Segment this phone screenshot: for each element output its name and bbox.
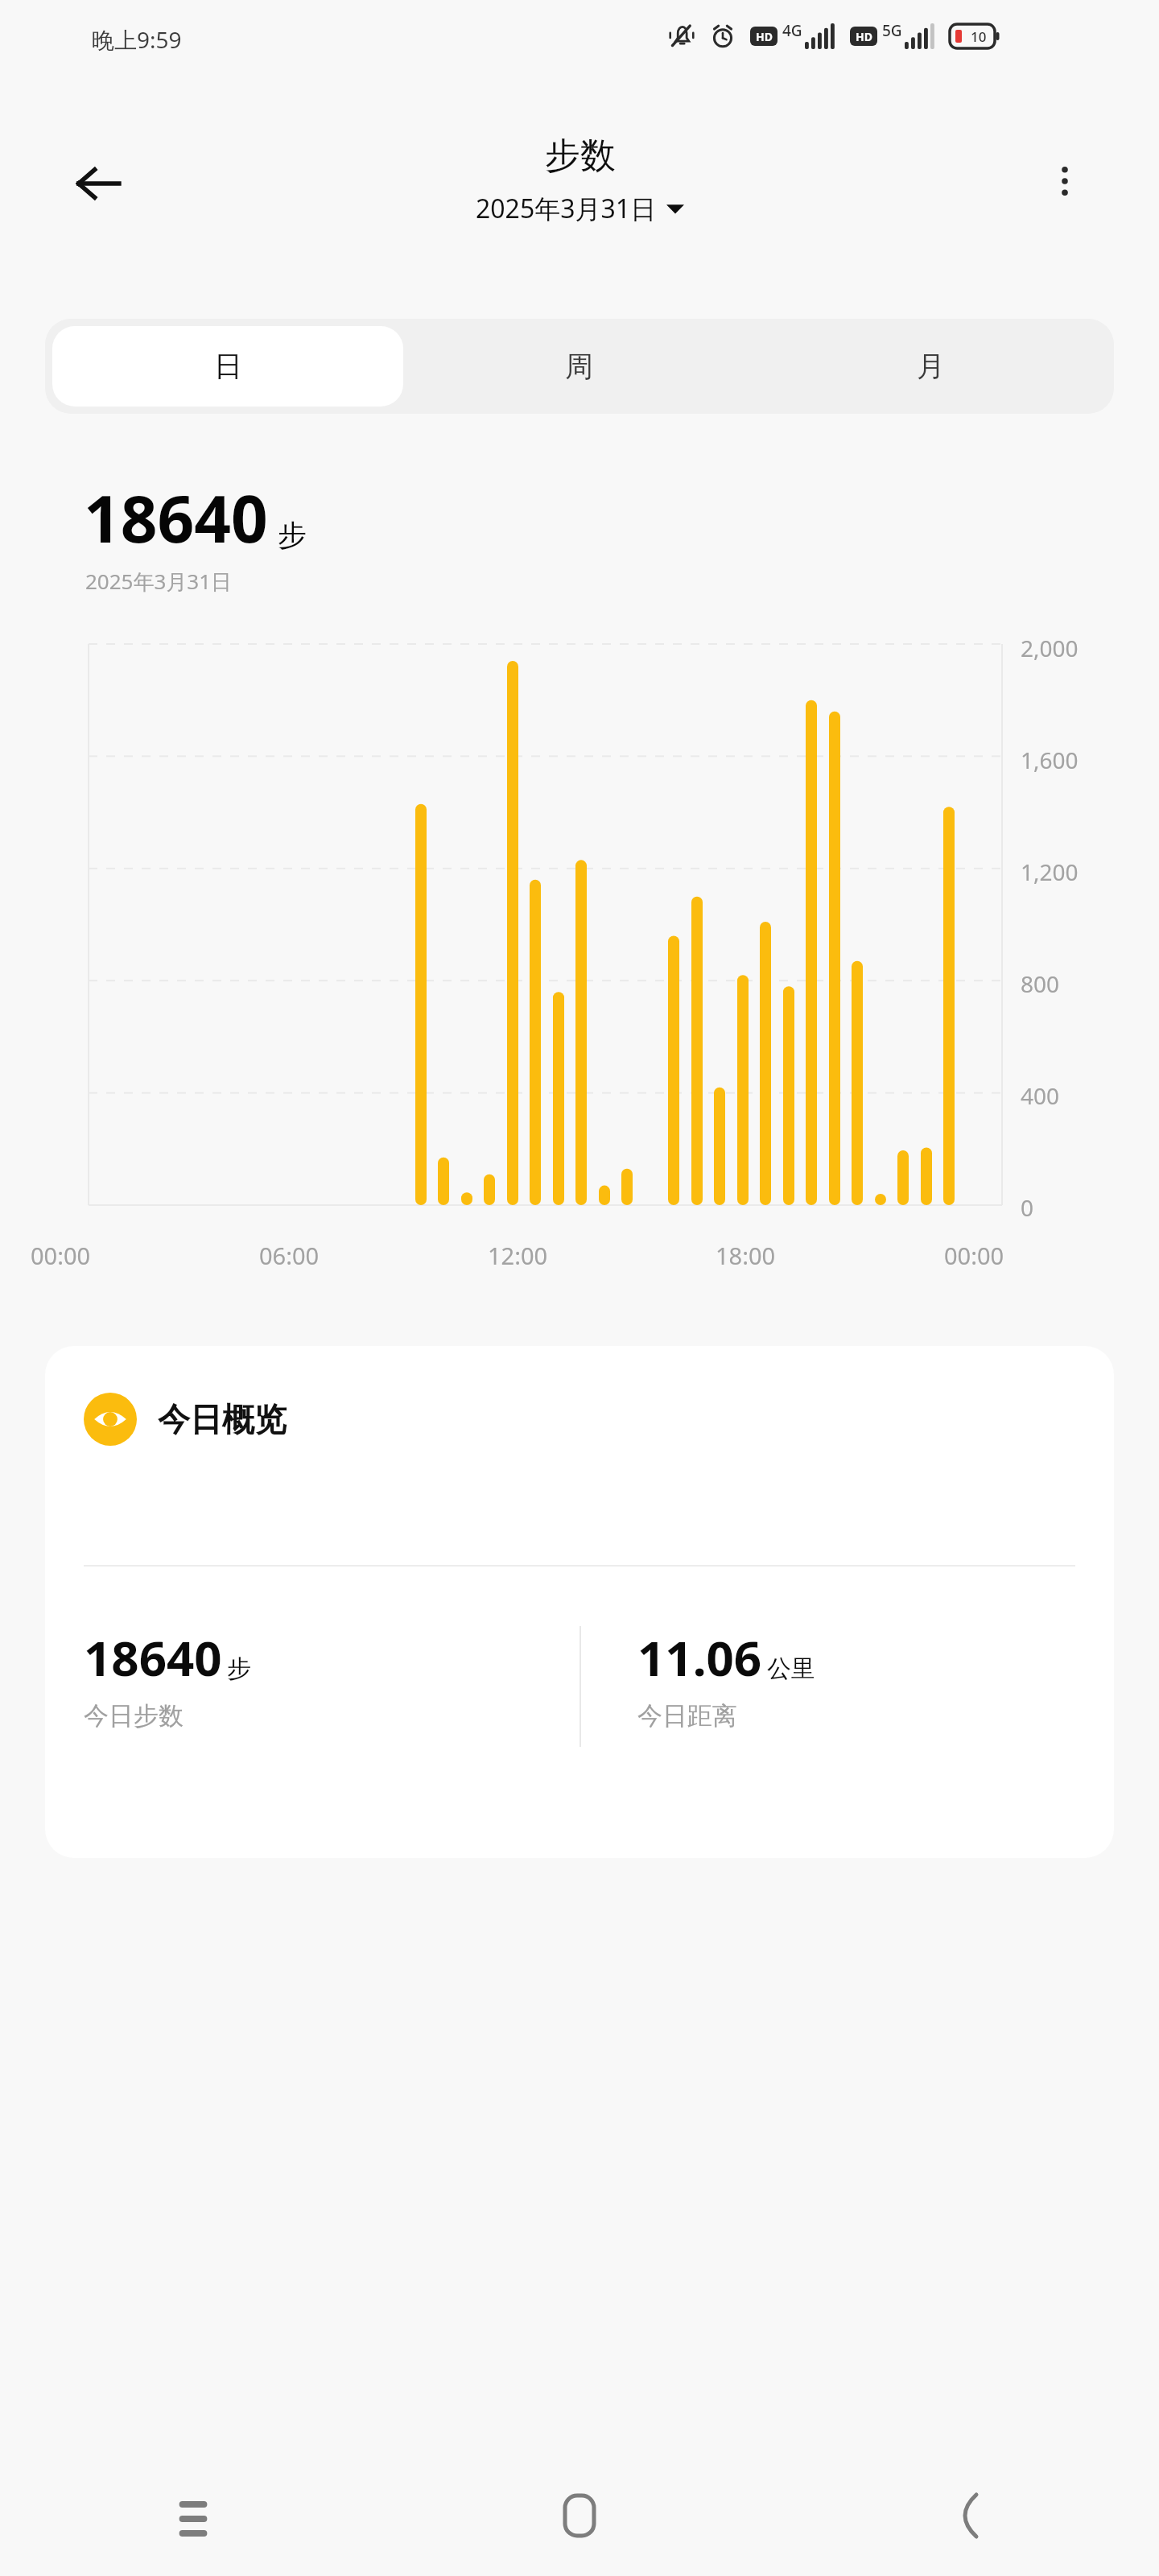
button[interactable]: 月 <box>755 326 1107 407</box>
staticText: 1,200 <box>1021 857 1079 887</box>
staticText: 2,000 <box>1021 633 1079 663</box>
staticText: 2025年3月31日 <box>476 191 657 226</box>
staticText: 日 <box>214 349 242 384</box>
button[interactable]: 周 <box>403 326 755 407</box>
staticText: 5G <box>882 20 902 41</box>
staticText: 18640 <box>84 473 268 561</box>
staticText: 2025年3月31日 <box>85 567 233 596</box>
staticText: 步 <box>278 517 307 553</box>
staticText: 周 <box>565 349 593 384</box>
staticText: 1,600 <box>1021 745 1079 775</box>
staticText: 0 <box>1021 1192 1034 1223</box>
staticText: 00:00 <box>31 1240 91 1271</box>
staticText: 18640 <box>84 1624 222 1690</box>
button[interactable]: More options <box>1029 145 1101 217</box>
staticText: 12:00 <box>488 1240 548 1271</box>
staticText: 月 <box>917 349 945 384</box>
staticText: 步 <box>227 1653 251 1684</box>
staticText: 00:00 <box>944 1240 1004 1271</box>
staticText: 800 <box>1021 968 1060 999</box>
button[interactable]: 日 <box>52 326 403 407</box>
staticText: 400 <box>1021 1080 1060 1111</box>
button[interactable]: 2025年3月31日 <box>469 188 691 229</box>
staticText: 步数 <box>545 134 616 178</box>
staticText: 晚上9:59 <box>92 24 182 55</box>
button[interactable]: Home <box>386 2455 773 2576</box>
staticText: HD <box>856 29 872 44</box>
staticText: 今日步数 <box>84 1700 184 1732</box>
staticText: 11.06 <box>637 1624 762 1690</box>
staticText: 4G <box>782 20 802 41</box>
button[interactable]: Recents <box>0 2455 386 2576</box>
button[interactable]: Back <box>60 145 137 222</box>
staticText: 公里 <box>767 1653 815 1684</box>
staticText: 10 <box>971 27 987 46</box>
button[interactable]: 今日概览 <box>45 1346 1114 1858</box>
staticText: HD <box>756 29 773 44</box>
button[interactable]: Back <box>773 2455 1159 2576</box>
staticText: 今日距离 <box>637 1700 737 1732</box>
staticText: 06:00 <box>259 1240 320 1271</box>
staticText: 今日概览 <box>158 1399 287 1439</box>
staticText: 18:00 <box>716 1240 776 1271</box>
